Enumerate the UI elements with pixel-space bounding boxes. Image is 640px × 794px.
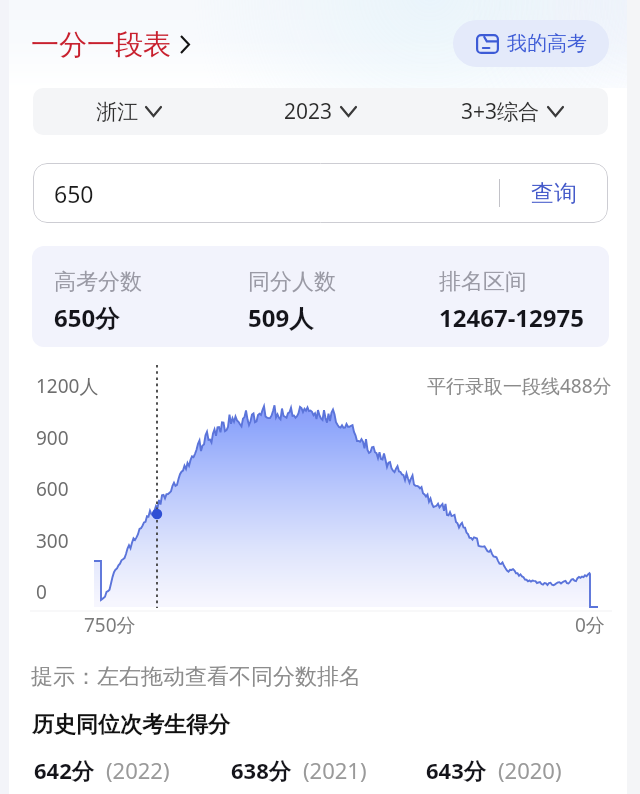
button[interactable]: 我的高考 <box>453 20 609 67</box>
staticText: 300 <box>36 528 69 554</box>
staticText: (2020) <box>498 755 562 785</box>
staticText: 750分 <box>84 612 136 638</box>
button[interactable]: 浙江 <box>33 88 224 135</box>
staticText: (2021) <box>303 755 367 785</box>
staticText: 642分 <box>34 755 94 785</box>
button[interactable]: 一分一段表 <box>31 27 190 62</box>
staticText: 638分 <box>231 755 291 785</box>
staticText: 提示：左右拖动查看不同分数排名 <box>31 663 361 691</box>
staticText: 我的高考 <box>507 31 587 56</box>
staticText: 1200人 <box>36 373 99 399</box>
staticText: 900 <box>36 425 69 451</box>
staticText: 650分 <box>54 301 120 334</box>
staticText: 12467-12975 <box>439 301 584 334</box>
button[interactable]: 查询 <box>500 163 608 223</box>
staticText: 浙江 <box>96 99 138 125</box>
staticText: 同分人数 <box>248 268 336 296</box>
button[interactable]: 3+3综合 <box>416 88 608 135</box>
staticText: (2022) <box>106 755 170 785</box>
staticText: 2023 <box>284 97 333 126</box>
staticText: 3+3综合 <box>461 97 540 126</box>
button[interactable]: 2023 <box>224 88 416 135</box>
staticText: 历史同位次考生得分 <box>32 711 230 739</box>
staticText: 600 <box>36 476 69 502</box>
staticText: 0分 <box>575 612 605 638</box>
staticText: 高考分数 <box>54 268 142 296</box>
staticText: 643分 <box>426 755 486 785</box>
staticText: 0 <box>36 579 47 605</box>
staticText: 650 <box>54 178 499 209</box>
staticText: 平行录取一段线488分 <box>427 373 612 399</box>
staticText: 排名区间 <box>439 268 527 296</box>
staticText: 查询 <box>531 179 577 208</box>
staticText: 一分一段表 <box>31 27 171 62</box>
staticText: 509人 <box>248 301 314 334</box>
